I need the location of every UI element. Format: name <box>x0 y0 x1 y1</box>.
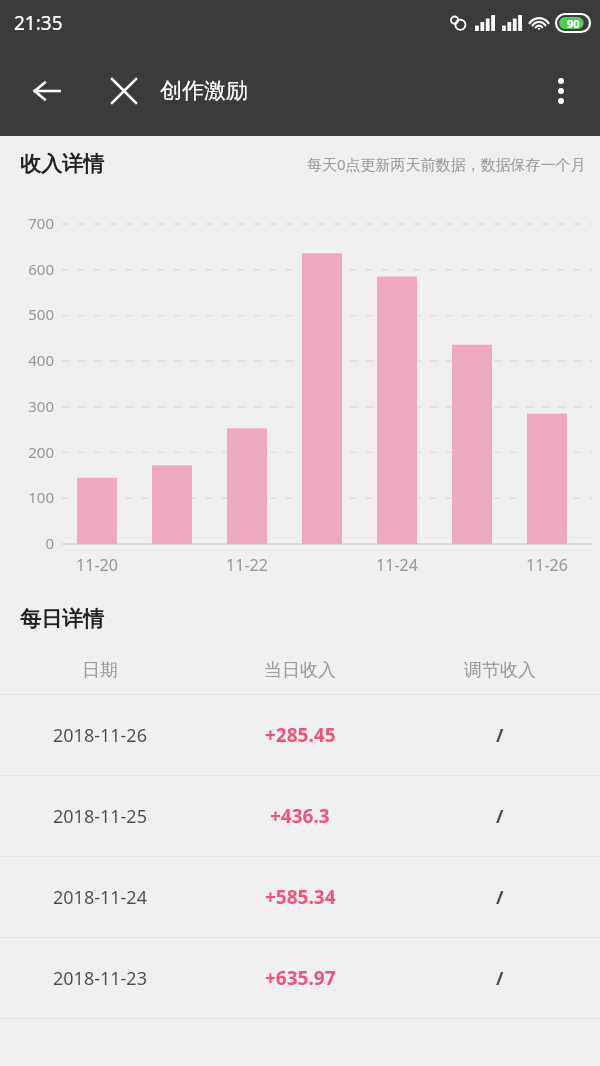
button[interactable]: 2018-11-23 <box>0 938 600 1018</box>
staticText: / <box>496 723 504 748</box>
staticText: +436.3 <box>270 803 330 829</box>
staticText: 当日收入 <box>264 659 336 682</box>
staticText: 收入详情 <box>20 151 104 177</box>
staticText: 200 <box>10 442 54 462</box>
button[interactable]: More options <box>536 66 586 116</box>
staticText: 500 <box>10 304 54 324</box>
staticText: 每日详情 <box>20 606 104 632</box>
button[interactable]: Close <box>100 67 148 115</box>
staticText: 11-22 <box>207 554 287 576</box>
staticText: / <box>496 804 504 829</box>
staticText: 日期 <box>82 659 118 682</box>
staticText: 90 <box>567 16 580 31</box>
staticText: / <box>496 885 504 910</box>
staticText: +285.45 <box>265 722 336 748</box>
staticText: 400 <box>10 350 54 370</box>
staticText: 调节收入 <box>464 659 536 682</box>
staticText: 11-26 <box>507 554 587 576</box>
staticText: / <box>496 966 504 991</box>
staticText: 2018-11-26 <box>53 723 147 748</box>
button[interactable]: 2018-11-24 <box>0 857 600 937</box>
staticText: 2018-11-24 <box>53 885 147 910</box>
staticText: 21:35 <box>14 10 63 36</box>
staticText: 700 <box>10 213 54 233</box>
staticText: +585.34 <box>265 884 336 910</box>
button[interactable]: 2018-11-26 <box>0 695 600 775</box>
staticText: 2018-11-25 <box>53 804 147 829</box>
button[interactable]: Back <box>22 66 72 116</box>
staticText: 11-20 <box>57 554 137 576</box>
staticText: 300 <box>10 396 54 416</box>
staticText: +635.97 <box>265 965 336 991</box>
button[interactable]: 2018-11-25 <box>0 776 600 856</box>
staticText: 2018-11-23 <box>53 966 147 991</box>
staticText: 每天0点更新两天前数据，数据保存一个月 <box>307 154 586 174</box>
staticText: 创作激励 <box>160 77 248 105</box>
staticText: 100 <box>10 487 54 507</box>
staticText: 0 <box>10 533 54 553</box>
staticText: 600 <box>10 259 54 279</box>
staticText: 11-24 <box>357 554 437 576</box>
